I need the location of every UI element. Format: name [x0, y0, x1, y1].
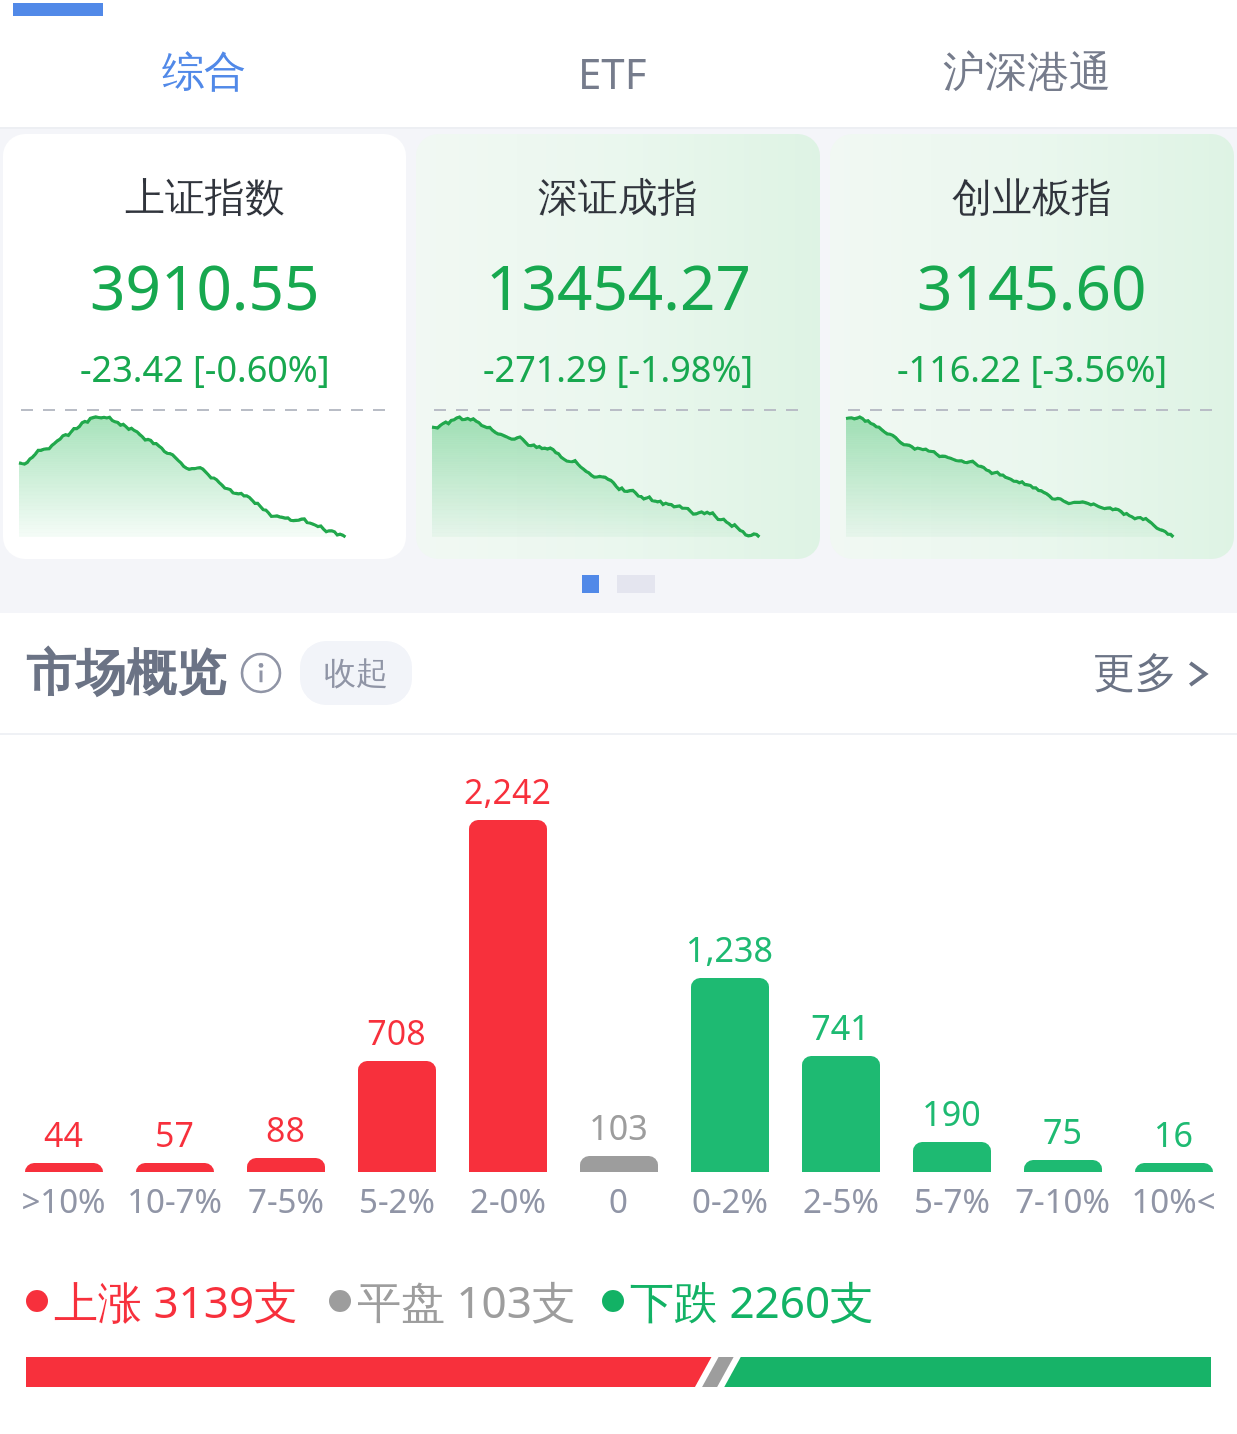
button[interactable]: [26, 1357, 1211, 1387]
staticText: 44: [44, 1111, 83, 1157]
staticText: 2,242: [464, 768, 551, 814]
button[interactable]: 57: [119, 735, 230, 1172]
staticText: 741: [811, 1004, 870, 1050]
staticText: 2-5%: [803, 1178, 879, 1223]
button[interactable]: 190: [896, 735, 1007, 1172]
staticText: 综合: [162, 46, 246, 99]
staticText: 3145.60: [917, 244, 1147, 328]
staticText: 2-0%: [470, 1178, 546, 1223]
staticText: 创业板指: [952, 172, 1112, 222]
button[interactable]: 下跌 2260支: [602, 1271, 875, 1331]
staticText: 5-7%: [914, 1178, 990, 1223]
staticText: -271.29 [-1.98%]: [483, 344, 754, 393]
button[interactable]: 44: [8, 735, 119, 1172]
staticText: 13454.27: [486, 244, 751, 328]
button[interactable]: 2,242: [452, 735, 563, 1172]
staticText: 16: [1154, 1111, 1193, 1157]
staticText: 平盘 103支: [357, 1271, 576, 1331]
button[interactable]: 103: [563, 735, 674, 1172]
staticText: 10-7%: [127, 1178, 222, 1223]
button[interactable]: 沪深港通: [816, 17, 1237, 127]
staticText: -23.42 [-0.60%]: [80, 344, 330, 393]
button[interactable]: 信息: [240, 652, 282, 694]
staticText: 上涨 3139支: [54, 1271, 299, 1331]
staticText: 下跌 2260支: [630, 1271, 875, 1331]
button[interactable]: 平盘 103支: [329, 1271, 576, 1331]
staticText: 10%<: [1131, 1178, 1216, 1223]
staticText: >10%: [21, 1178, 106, 1223]
staticText: 57: [155, 1111, 194, 1157]
staticText: 沪深港通: [943, 46, 1111, 99]
button[interactable]: 更多: [1093, 647, 1211, 700]
staticText: 7-5%: [248, 1178, 324, 1223]
button[interactable]: ETF: [408, 17, 816, 127]
button[interactable]: 上涨 3139支: [26, 1271, 299, 1331]
staticText: 103: [589, 1104, 648, 1150]
button[interactable]: 综合: [0, 17, 408, 127]
staticText: 收起: [324, 653, 388, 693]
button[interactable]: 上证指数: [3, 134, 406, 559]
button[interactable]: 741: [785, 735, 896, 1172]
staticText: 更多: [1093, 647, 1177, 700]
button[interactable]: 深证成指: [416, 134, 820, 559]
button[interactable]: 88: [230, 735, 341, 1172]
staticText: 88: [266, 1106, 305, 1152]
staticText: ETF: [578, 44, 647, 101]
button[interactable]: 75: [1007, 735, 1118, 1172]
staticText: 1,238: [686, 926, 773, 972]
button[interactable]: 16: [1118, 735, 1229, 1172]
staticText: 上证指数: [125, 172, 285, 222]
button[interactable]: 1,238: [674, 735, 785, 1172]
staticText: 市场概览: [26, 642, 226, 705]
staticText: 0-2%: [692, 1178, 768, 1223]
button[interactable]: 创业板指: [830, 134, 1234, 559]
staticText: 708: [367, 1009, 426, 1055]
button[interactable]: 收起: [300, 641, 412, 705]
staticText: 190: [922, 1090, 981, 1136]
staticText: -116.22 [-3.56%]: [897, 344, 1168, 393]
staticText: 7-10%: [1015, 1178, 1110, 1223]
staticText: 5-2%: [359, 1178, 435, 1223]
staticText: 75: [1043, 1108, 1082, 1154]
button[interactable]: 708: [341, 735, 452, 1172]
staticText: 3910.55: [90, 244, 320, 328]
staticText: 0: [609, 1178, 628, 1223]
staticText: 深证成指: [538, 172, 698, 222]
